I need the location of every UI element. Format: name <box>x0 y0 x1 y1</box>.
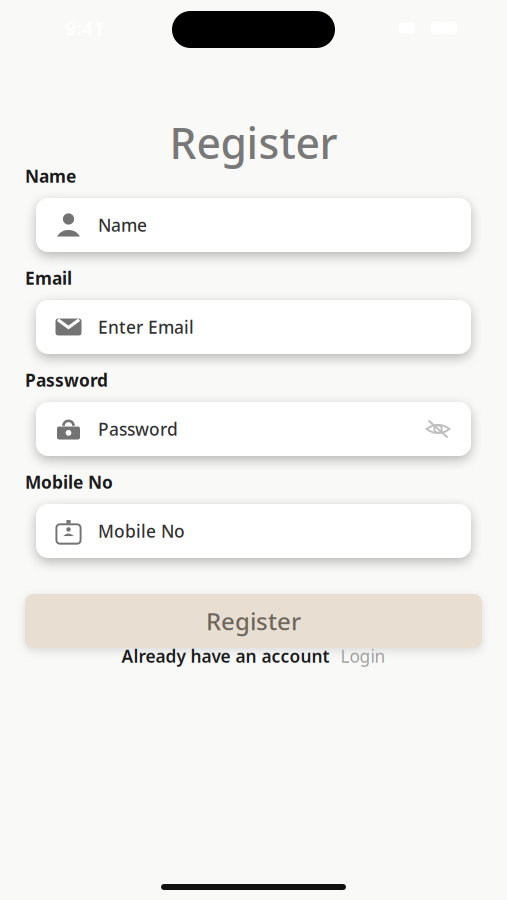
button[interactable]: Enter Email <box>36 300 471 354</box>
button[interactable]: Register <box>25 594 482 648</box>
button[interactable]: Name <box>36 198 471 252</box>
staticText: Email <box>25 266 72 289</box>
staticText: Password <box>25 368 108 391</box>
button[interactable]: Mobile No <box>36 504 471 558</box>
staticText: Login <box>340 644 385 667</box>
staticText: Name <box>98 213 147 236</box>
button[interactable]: Login <box>340 644 385 667</box>
staticText: Mobile No <box>98 519 185 542</box>
staticText: Password <box>98 417 178 440</box>
staticText: Enter Email <box>98 315 194 338</box>
staticText: Register <box>169 114 337 171</box>
staticText: Already have an account <box>121 644 329 667</box>
staticText: Register <box>206 605 301 637</box>
button[interactable]: Password <box>36 402 471 456</box>
staticText: Mobile No <box>25 470 113 493</box>
staticText: Name <box>25 164 76 187</box>
